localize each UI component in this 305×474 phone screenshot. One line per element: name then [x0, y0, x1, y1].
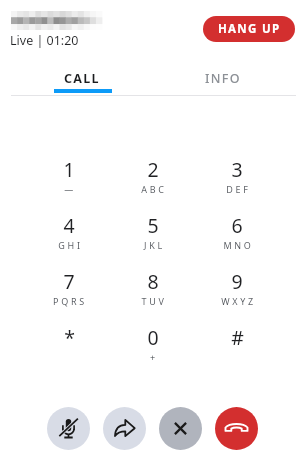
button[interactable]: 7: [27, 268, 111, 324]
button[interactable]: #: [195, 324, 279, 380]
staticText: MNO: [223, 239, 254, 251]
button[interactable]: End call: [215, 407, 258, 450]
button[interactable]: Share: [103, 407, 146, 450]
button[interactable]: 3: [195, 156, 279, 212]
staticText: GHI: [58, 239, 83, 251]
staticText: HANG UP: [218, 21, 281, 37]
staticText: 2: [147, 156, 159, 183]
button[interactable]: 1: [27, 156, 111, 212]
staticText: 9: [231, 268, 243, 295]
button[interactable]: CALL: [11, 66, 152, 90]
staticText: +: [150, 351, 158, 363]
button[interactable]: HANG UP: [203, 16, 295, 42]
staticText: TUV: [141, 295, 167, 307]
button[interactable]: 5: [111, 212, 195, 268]
button[interactable]: 9: [195, 268, 279, 324]
staticText: WXYZ: [221, 295, 256, 307]
button[interactable]: 8: [111, 268, 195, 324]
staticText: 3: [231, 156, 243, 183]
button[interactable]: *: [27, 324, 111, 380]
staticText: CALL: [64, 70, 100, 87]
staticText: 7: [63, 268, 75, 295]
button[interactable]: 0: [111, 324, 195, 380]
staticText: 5: [147, 212, 159, 239]
staticText: #: [231, 324, 244, 351]
staticText: PQRS: [53, 295, 87, 307]
staticText: 6: [231, 212, 243, 239]
staticText: *: [64, 324, 75, 351]
button[interactable]: Close dial pad: [159, 407, 202, 450]
button[interactable]: 6: [195, 212, 279, 268]
button[interactable]: 2: [111, 156, 195, 212]
staticText: JKL: [144, 239, 165, 251]
button[interactable]: Mute microphone: [47, 407, 90, 450]
staticText: 8: [147, 268, 159, 295]
staticText: DEF: [226, 183, 251, 195]
staticText: ABC: [141, 183, 167, 195]
staticText: 1: [63, 156, 75, 183]
staticText: Live | 01:20: [10, 32, 79, 49]
staticText: —: [64, 183, 76, 195]
staticText: INFO: [205, 70, 241, 87]
button[interactable]: INFO: [152, 66, 294, 90]
staticText: 4: [63, 212, 75, 239]
staticText: 0: [147, 324, 159, 351]
button[interactable]: 4: [27, 212, 111, 268]
